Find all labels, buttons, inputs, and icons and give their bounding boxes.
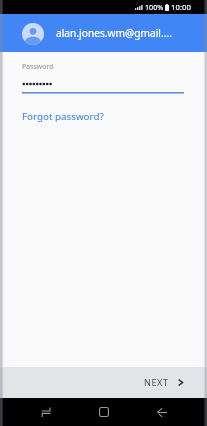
button[interactable]: Home bbox=[75, 398, 133, 426]
staticText: 10:00 bbox=[171, 2, 191, 13]
button[interactable]: NEXT bbox=[130, 370, 207, 396]
staticText: alan.jones.wm@gmail.... bbox=[56, 26, 172, 40]
staticText: Password bbox=[22, 62, 54, 72]
button[interactable]: alan.jones.wm@gmail.... bbox=[0, 14, 207, 52]
staticText: NEXT bbox=[144, 376, 169, 388]
staticText: Forgot password? bbox=[22, 110, 104, 123]
button[interactable]: Recents bbox=[16, 398, 75, 426]
button[interactable]: Forgot password? bbox=[0, 110, 116, 123]
staticText: 100% bbox=[145, 2, 164, 12]
button[interactable]: Back bbox=[133, 398, 191, 426]
